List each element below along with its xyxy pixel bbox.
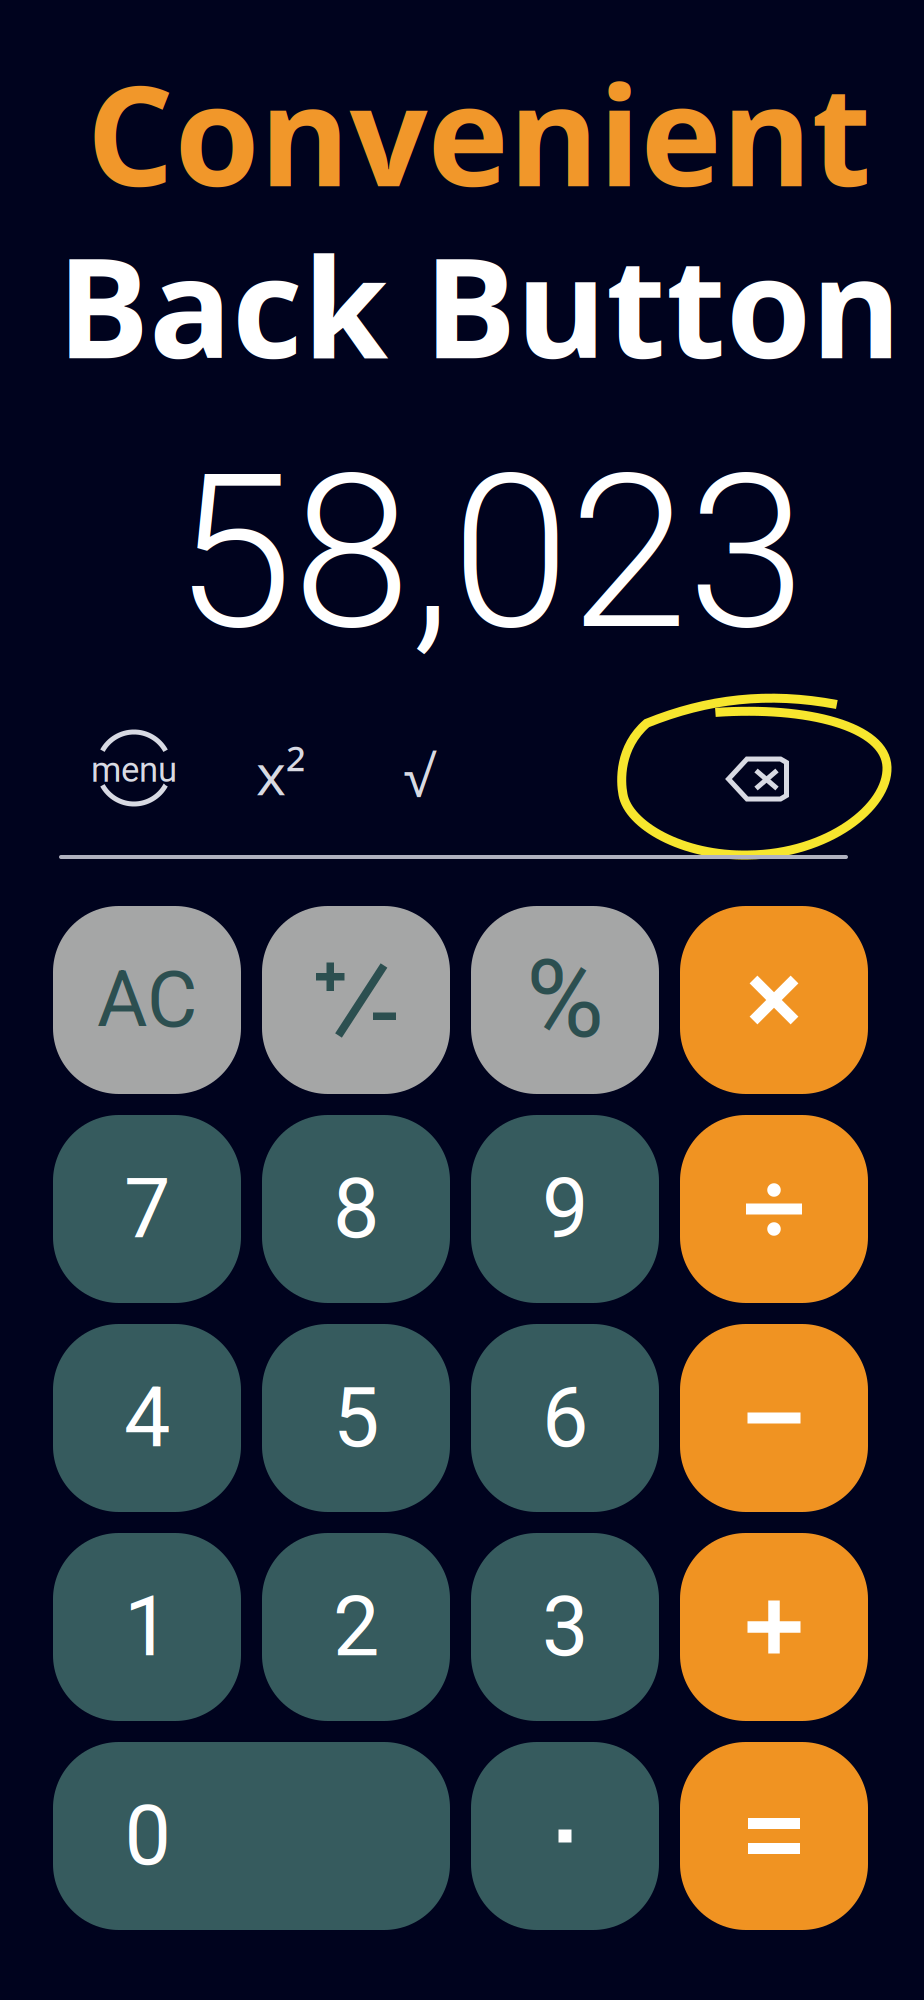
button[interactable]: 7 [53,1115,241,1303]
staticText: 8 [333,1161,379,1257]
staticText: % [526,937,604,1062]
staticText: menu [91,750,177,790]
staticText: √ [403,737,434,813]
button[interactable]: Equals [680,1742,868,1930]
staticText: 2 [333,1579,379,1675]
button[interactable]: Square root [364,723,474,827]
button[interactable]: Multiply [680,906,868,1094]
button[interactable]: Square [226,721,336,825]
button[interactable]: 8 [262,1115,450,1303]
button[interactable]: Decimal point [471,1742,659,1930]
button[interactable]: 2 [262,1533,450,1721]
staticText: 9 [542,1161,588,1257]
button[interactable]: 4 [53,1324,241,1512]
staticText: 3 [542,1579,588,1675]
button[interactable]: 6 [471,1324,659,1512]
staticText: 4 [124,1370,170,1466]
button[interactable]: Backspace [692,727,822,831]
button[interactable]: Menu [74,716,194,820]
button[interactable]: 0 [53,1742,450,1930]
staticText: 5 [333,1370,379,1466]
button[interactable]: Plus minus [262,906,450,1094]
staticText: 0 [124,1788,170,1884]
staticText: 1 [124,1579,170,1675]
button[interactable]: 1 [53,1533,241,1721]
staticText: Convenient [86,39,871,226]
staticText: x² [256,734,306,812]
button[interactable]: Divide [680,1115,868,1303]
button[interactable]: 5 [262,1324,450,1512]
button[interactable]: 3 [471,1533,659,1721]
button[interactable]: 9 [471,1115,659,1303]
button[interactable]: Percent [471,906,659,1094]
staticText: Back Button [57,211,901,398]
staticText: 58,023 [174,428,805,678]
button[interactable]: All clear [53,906,241,1094]
button[interactable]: Minus [680,1324,868,1512]
staticText: AC [97,955,197,1045]
staticText: 7 [124,1161,170,1257]
button[interactable]: Plus [680,1533,868,1721]
staticText: 6 [542,1370,588,1466]
